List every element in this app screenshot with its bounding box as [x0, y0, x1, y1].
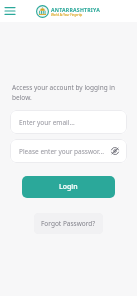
button[interactable]: Login — [22, 176, 115, 198]
staticText: Login — [59, 182, 78, 192]
staticText: Forgot Password? — [41, 219, 96, 228]
button[interactable]: Forgot Password? — [34, 213, 103, 234]
button[interactable]: Show password — [109, 145, 121, 157]
staticText: ANTARRASHTRIYA — [51, 6, 100, 13]
staticText: Access your account by logging in below. — [12, 83, 119, 102]
button[interactable]: Please enter your passwor... — [10, 139, 127, 163]
staticText: Enter your email... — [19, 118, 75, 127]
button[interactable]: ANTARRASHTRIYA — [36, 5, 100, 18]
button[interactable]: Enter your email... — [10, 110, 127, 134]
staticText: Please enter your passwor... — [19, 147, 104, 156]
staticText: World At Your Fingertip — [51, 13, 83, 17]
button[interactable]: Open navigation menu — [3, 4, 17, 18]
